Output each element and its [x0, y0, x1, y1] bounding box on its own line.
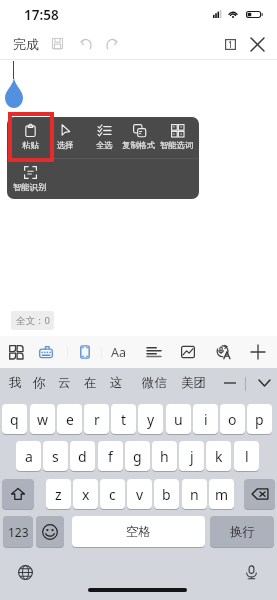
- button[interactable]: 云: [53, 372, 75, 394]
- button[interactable]: Close: [247, 34, 267, 54]
- button[interactable]: v: [127, 479, 152, 509]
- staticText: a: [25, 447, 33, 466]
- button[interactable]: w: [30, 404, 55, 434]
- button[interactable]: d: [70, 441, 95, 471]
- button[interactable]: g: [125, 441, 150, 471]
- button[interactable]: 空格: [72, 516, 205, 547]
- staticText: 空格: [126, 524, 151, 540]
- staticText: 复制格式: [122, 140, 156, 150]
- staticText: 完成: [13, 36, 39, 52]
- staticText: g: [133, 447, 142, 466]
- staticText: 你: [33, 375, 46, 391]
- button[interactable]: i: [193, 404, 218, 434]
- button[interactable]: 你: [28, 372, 50, 394]
- button[interactable]: More: [218, 372, 242, 394]
- button[interactable]: m: [209, 479, 234, 509]
- button[interactable]: f: [98, 441, 123, 471]
- button[interactable]: 粘贴: [13, 117, 47, 157]
- button[interactable]: Undo: [75, 32, 98, 55]
- button[interactable]: Keyboard: [33, 339, 59, 365]
- button[interactable]: 这: [105, 372, 127, 394]
- button[interactable]: z: [46, 479, 71, 509]
- button[interactable]: 在: [79, 372, 101, 394]
- staticText: 1: [228, 39, 233, 50]
- staticText: t: [121, 410, 127, 429]
- button[interactable]: q: [2, 404, 27, 434]
- button[interactable]: s: [43, 441, 68, 471]
- button[interactable]: j: [179, 441, 204, 471]
- button[interactable]: Emoji: [36, 516, 64, 547]
- staticText: 智能识别: [13, 182, 47, 192]
- button[interactable]: x: [73, 479, 98, 509]
- staticText: 全选: [96, 140, 113, 150]
- staticText: w: [37, 410, 49, 429]
- button[interactable]: b: [154, 479, 179, 509]
- button[interactable]: 智能选词: [159, 117, 195, 157]
- staticText: c: [109, 485, 116, 504]
- button[interactable]: 我: [4, 372, 26, 394]
- staticText: b: [162, 485, 171, 504]
- staticText: v: [136, 485, 144, 504]
- staticText: x: [82, 485, 90, 504]
- button[interactable]: Backspace: [244, 479, 275, 509]
- button[interactable]: e: [57, 404, 82, 434]
- button[interactable]: y: [138, 404, 163, 434]
- staticText: 我: [9, 375, 22, 391]
- button[interactable]: 123: [3, 516, 33, 547]
- staticText: r: [94, 410, 100, 429]
- button[interactable]: Shift: [2, 479, 34, 509]
- button[interactable]: Grid: [3, 339, 29, 365]
- button[interactable]: 复制格式: [121, 117, 157, 157]
- button[interactable]: t: [111, 404, 136, 434]
- button[interactable]: 选择: [50, 117, 80, 157]
- button[interactable]: 美团: [177, 372, 210, 394]
- staticText: j: [190, 447, 194, 466]
- button[interactable]: Image: [175, 339, 201, 365]
- button[interactable]: Voice input: [240, 561, 262, 583]
- button[interactable]: Save: [46, 32, 69, 55]
- button[interactable]: 全选: [89, 117, 119, 157]
- button[interactable]: 微信: [138, 372, 171, 394]
- button[interactable]: Align: [141, 339, 167, 365]
- staticText: 美团: [181, 375, 206, 391]
- staticText: y: [147, 410, 155, 429]
- button[interactable]: Translate: [210, 339, 236, 365]
- staticText: 这: [110, 375, 123, 391]
- staticText: k: [215, 447, 223, 466]
- staticText: 粘贴: [22, 140, 39, 150]
- button[interactable]: r: [84, 404, 109, 434]
- staticText: 换行: [230, 524, 255, 540]
- staticText: 智能选词: [160, 140, 194, 150]
- button[interactable]: 全文：0: [11, 311, 54, 330]
- button[interactable]: Window count: [220, 34, 240, 54]
- button[interactable]: p: [247, 404, 272, 434]
- button[interactable]: n: [182, 479, 207, 509]
- staticText: e: [66, 410, 74, 429]
- staticText: 选择: [57, 140, 74, 150]
- button[interactable]: Add: [245, 339, 271, 365]
- staticText: u: [174, 410, 183, 429]
- button[interactable]: Collapse keyboard: [253, 372, 275, 394]
- staticText: o: [228, 410, 237, 429]
- button[interactable]: Page: [72, 339, 98, 365]
- button[interactable]: Change language: [14, 561, 36, 583]
- button[interactable]: Aa: [107, 340, 131, 364]
- staticText: h: [160, 447, 169, 466]
- staticText: f: [108, 447, 113, 466]
- staticText: l: [245, 447, 249, 466]
- button[interactable]: a: [16, 441, 41, 471]
- staticText: 云: [58, 375, 71, 391]
- button[interactable]: o: [220, 404, 245, 434]
- button[interactable]: c: [100, 479, 125, 509]
- staticText: d: [78, 447, 87, 466]
- button[interactable]: h: [152, 441, 177, 471]
- button[interactable]: 智能识别: [12, 159, 48, 199]
- button[interactable]: u: [166, 404, 191, 434]
- staticText: n: [190, 485, 199, 504]
- staticText: s: [52, 447, 59, 466]
- button[interactable]: 换行: [210, 516, 274, 547]
- button[interactable]: k: [206, 441, 231, 471]
- button[interactable]: l: [234, 441, 259, 471]
- button[interactable]: 完成: [10, 34, 42, 54]
- button[interactable]: Redo: [100, 32, 123, 55]
